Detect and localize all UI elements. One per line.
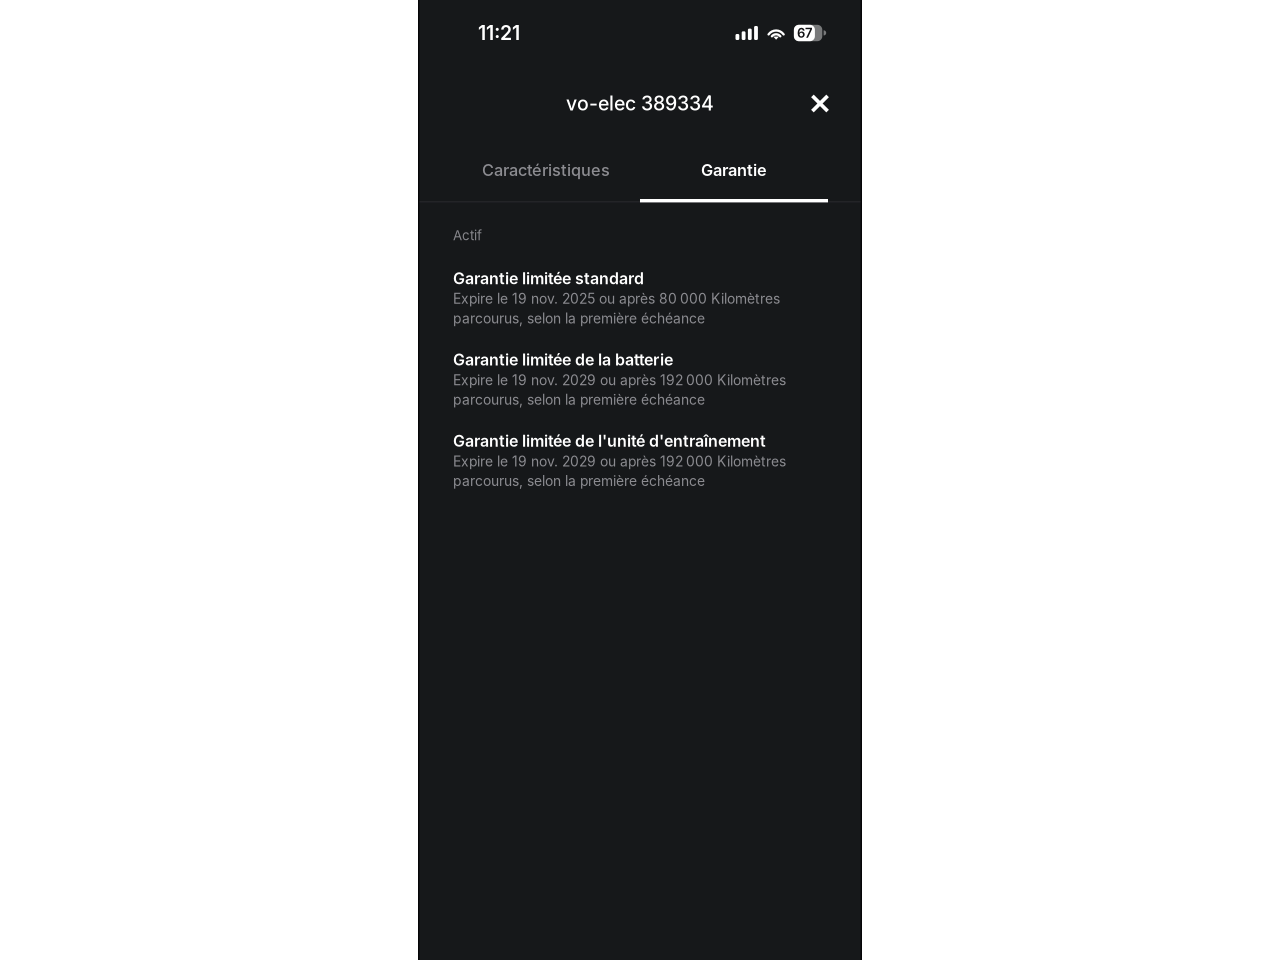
button[interactable]: Caractéristiques [452, 141, 640, 202]
staticText: vo-elec 389334 [566, 92, 714, 115]
staticText: 11:21 [478, 21, 520, 45]
button[interactable]: Fermer [798, 81, 842, 125]
staticText: Expire le 19 nov. 2029 ou après 192 000 … [453, 453, 786, 489]
staticText: Caractéristiques [482, 160, 610, 180]
staticText: Expire le 19 nov. 2029 ou après 192 000 … [453, 372, 786, 408]
staticText: Garantie limitée standard [453, 269, 644, 288]
staticText: Garantie limitée de l'unité d'entraîneme… [453, 431, 766, 451]
staticText: Garantie [701, 160, 767, 180]
staticText: 67 [797, 25, 813, 41]
staticText: Expire le 19 nov. 2025 ou après 80 000 K… [453, 290, 780, 327]
staticText: Actif [453, 227, 482, 243]
staticText: Garantie limitée de la batterie [453, 350, 673, 369]
button[interactable]: Garantie [640, 141, 828, 202]
